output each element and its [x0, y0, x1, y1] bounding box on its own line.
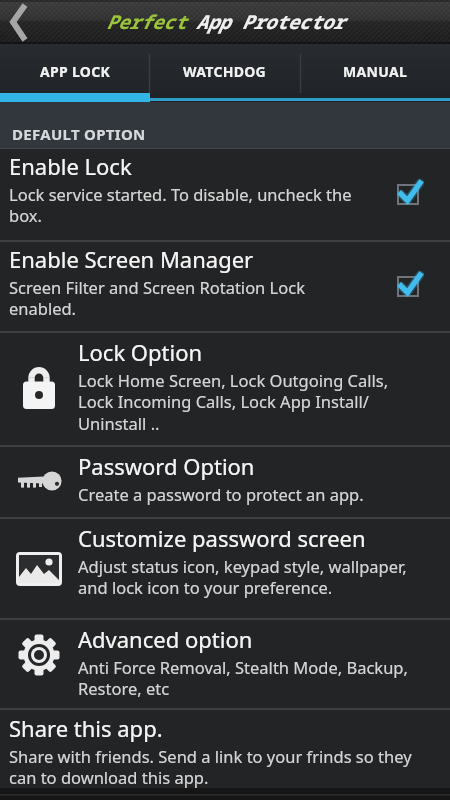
staticText: Share with friends. Send a link to your … [9, 745, 412, 789]
staticText: DEFAULT OPTION [12, 124, 146, 144]
button[interactable]: WATCHDOG [150, 44, 300, 98]
staticText: WATCHDOG [183, 62, 267, 81]
staticText: Anti Force Removal, Stealth Mode, Backup… [78, 656, 408, 700]
button[interactable]: Enable Lock [0, 149, 450, 240]
button[interactable]: MANUAL [300, 44, 450, 98]
button[interactable]: Advanced option [0, 620, 450, 708]
staticText: App Protector [196, 9, 345, 35]
staticText: Create a password to protect an app. [78, 483, 364, 505]
staticText: Lock Option [78, 337, 203, 367]
staticText: Customize password screen [78, 523, 366, 553]
button[interactable]: APP LOCK [0, 44, 150, 98]
staticText: Password Option [78, 451, 255, 481]
staticText: Enable Screen Manager [9, 244, 254, 274]
staticText: Lock Home Screen, Lock Outgoing Calls, L… [78, 369, 389, 435]
staticText: Lock service started. To disable, unchec… [9, 183, 352, 227]
button[interactable]: Customize password screen [0, 519, 450, 618]
staticText: Enable Lock [9, 151, 132, 181]
button[interactable]: Lock Option [0, 333, 450, 445]
button[interactable]: Enable Screen Manager [0, 242, 450, 331]
staticText: Screen Filter and Screen Rotation Lock e… [9, 276, 305, 320]
button[interactable]: Password Option [0, 447, 450, 517]
button[interactable] [0, 0, 34, 44]
staticText: Adjust status icon, keypad style, wallpa… [78, 555, 407, 599]
staticText: APP LOCK [40, 62, 111, 81]
staticText: Advanced option [78, 624, 253, 654]
button[interactable]: Share this app. [0, 710, 450, 800]
staticText: Share this app. [9, 713, 163, 743]
staticText: MANUAL [343, 62, 408, 81]
staticText: Perfect [106, 9, 186, 35]
